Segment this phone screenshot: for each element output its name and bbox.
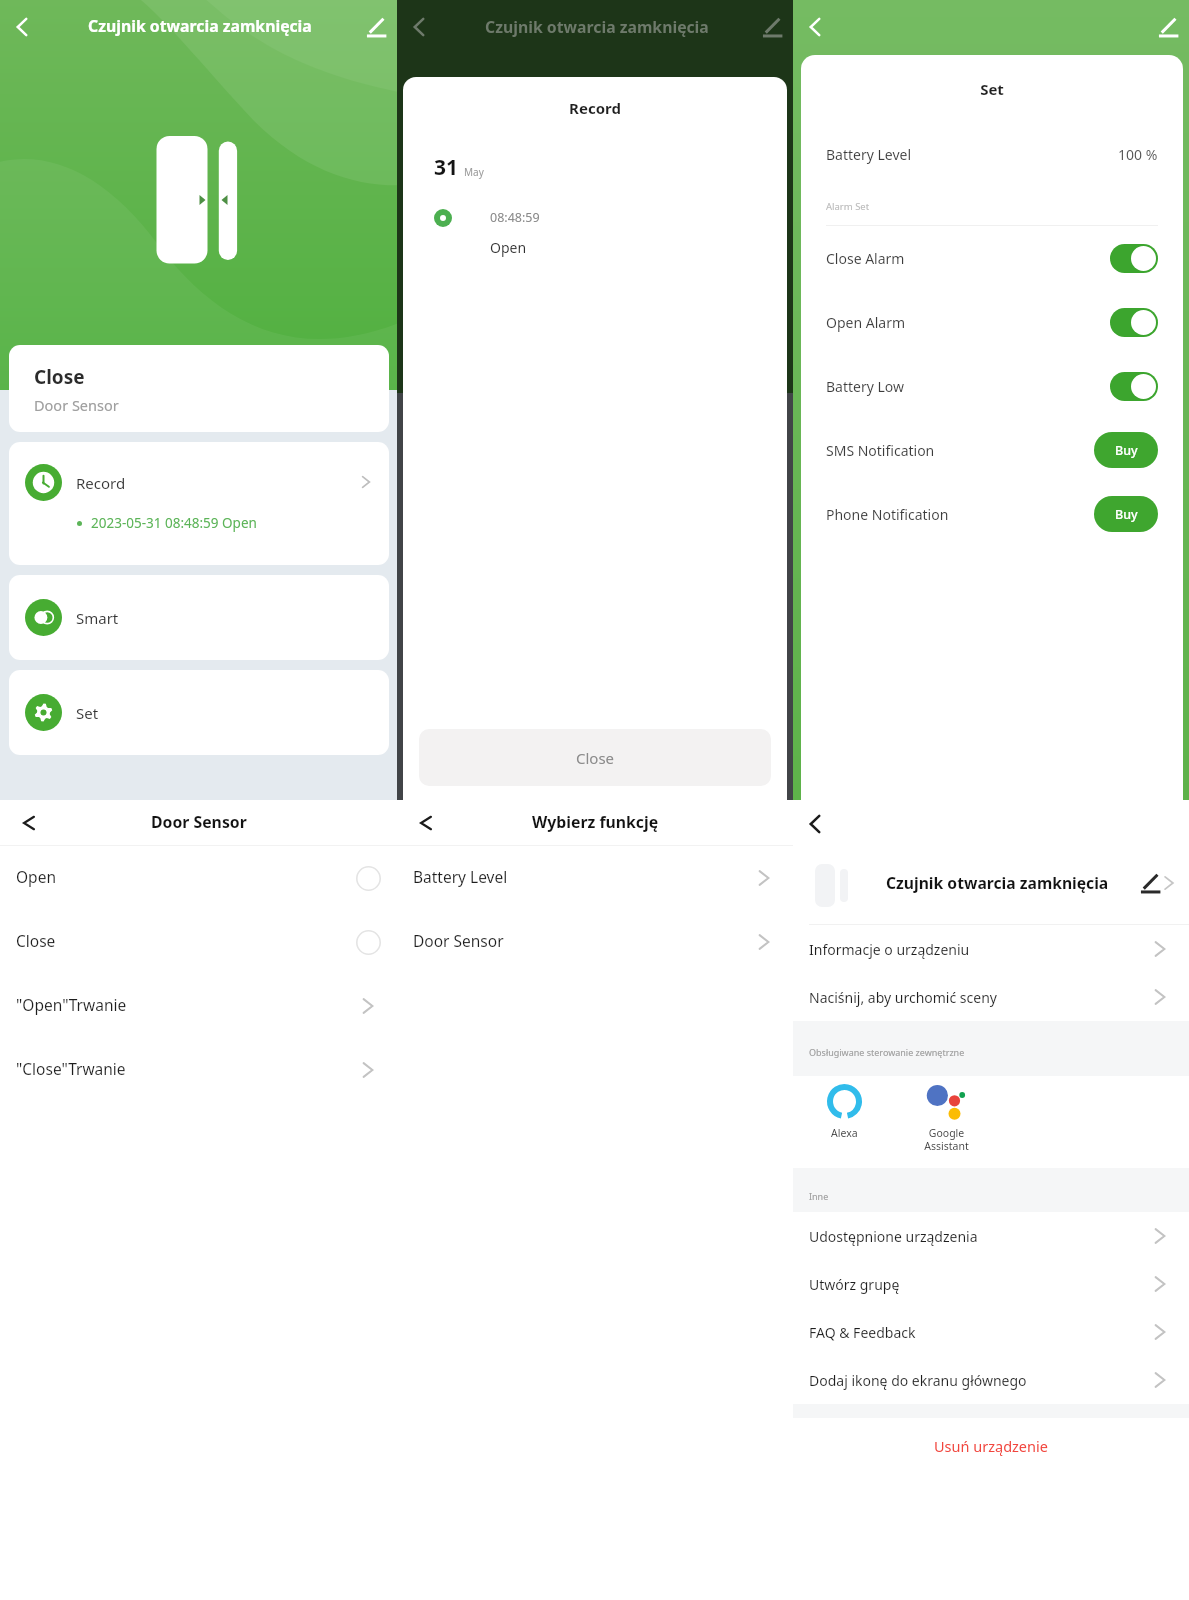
button[interactable]: Battery Low xyxy=(826,354,1158,418)
staticText: Naciśnij, aby urchomić sceny xyxy=(809,988,997,1007)
staticText: Alarm Set xyxy=(826,200,870,213)
staticText: Battery Level xyxy=(826,145,912,164)
button[interactable]: Door Sensor xyxy=(413,910,776,974)
button[interactable]: Udostępnione urządzenia xyxy=(809,1212,1172,1260)
staticText: Obsługiwane sterowanie zewnętrzne xyxy=(809,1046,965,1058)
button[interactable]: Buy xyxy=(1094,496,1158,532)
staticText: "Open"Trwanie xyxy=(16,994,127,1015)
staticText: Informacje o urządzeniu xyxy=(809,940,970,959)
staticText: Open xyxy=(490,238,527,257)
button[interactable]: Alexa xyxy=(811,1076,877,1140)
staticText: Utwórz grupę xyxy=(809,1275,900,1294)
staticText: Open xyxy=(16,866,56,887)
button[interactable]: Usuń urządzenie xyxy=(793,1418,1189,1474)
staticText: Open Alarm xyxy=(826,313,906,332)
button[interactable]: Set xyxy=(9,670,389,755)
staticText: "Close"Trwanie xyxy=(16,1058,126,1079)
staticText: Czujnik otwarcia zamknięcia xyxy=(88,15,312,37)
staticText: Door Sensor xyxy=(34,395,119,415)
staticText: Usuń urządzenie xyxy=(934,1436,1048,1456)
button[interactable]: Buy xyxy=(1094,432,1158,468)
button[interactable]: Battery Level xyxy=(413,846,776,910)
button[interactable]: Open Alarm xyxy=(826,290,1158,354)
staticText: Set xyxy=(801,79,1183,99)
staticText: Battery Level xyxy=(413,866,508,887)
staticText: Set xyxy=(76,703,99,723)
button[interactable]: "Open"Trwanie xyxy=(16,974,380,1038)
staticText: Door Sensor xyxy=(413,930,504,951)
button[interactable]: Close xyxy=(9,345,389,432)
staticText: Google Assistant xyxy=(924,1126,969,1153)
staticText: Door Sensor xyxy=(151,811,247,833)
staticText: 31 xyxy=(434,153,459,182)
button[interactable]: Edit xyxy=(760,13,788,41)
button[interactable]: Back xyxy=(8,13,36,41)
staticText: Record xyxy=(76,473,126,493)
button[interactable]: Record xyxy=(9,442,389,565)
button[interactable]: Open xyxy=(16,846,381,910)
staticText: May xyxy=(464,165,484,179)
staticText: Dodaj ikonę do ekranu głównego xyxy=(809,1371,1027,1390)
button[interactable]: SMS Notification xyxy=(826,418,1158,482)
button[interactable]: Smart xyxy=(9,575,389,660)
staticText: Buy xyxy=(1115,442,1138,459)
staticText: Wybierz funkcję xyxy=(532,811,659,833)
staticText: Inne xyxy=(809,1190,829,1202)
staticText: 2023-05-31 08:48:59 Open xyxy=(91,514,257,532)
button[interactable]: Back xyxy=(405,13,433,41)
button[interactable]: Phone Notification xyxy=(826,482,1158,546)
staticText: Czujnik otwarcia zamknięcia xyxy=(485,16,709,38)
button[interactable]: FAQ & Feedback xyxy=(809,1308,1172,1356)
staticText: 08:48:59 xyxy=(490,209,540,226)
staticText: Close xyxy=(576,748,615,768)
button[interactable]: Close xyxy=(16,910,381,974)
staticText: Record xyxy=(403,98,787,118)
button[interactable]: Czujnik otwarcia zamknięcia xyxy=(815,848,1181,924)
button[interactable]: Close Alarm xyxy=(826,226,1158,290)
staticText: 100 % xyxy=(1118,145,1158,164)
staticText: FAQ & Feedback xyxy=(809,1323,916,1342)
button[interactable]: Naciśnij, aby urchomić sceny xyxy=(809,973,1172,1021)
staticText: SMS Notification xyxy=(826,441,935,460)
button[interactable]: Back xyxy=(412,809,440,837)
button[interactable]: Utwórz grupę xyxy=(809,1260,1172,1308)
button[interactable]: Close xyxy=(419,729,771,786)
staticText: Phone Notification xyxy=(826,505,949,524)
staticText: Battery Low xyxy=(826,377,905,396)
button[interactable]: Back xyxy=(15,809,43,837)
staticText: Close xyxy=(34,364,85,390)
button[interactable]: Back xyxy=(801,13,829,41)
staticText: Close Alarm xyxy=(826,249,905,268)
button[interactable]: Informacje o urządzeniu xyxy=(809,925,1172,973)
staticText: Udostępnione urządzenia xyxy=(809,1227,978,1246)
button[interactable]: Edit xyxy=(364,13,392,41)
button[interactable]: Dodaj ikonę do ekranu głównego xyxy=(809,1356,1172,1404)
button[interactable]: Back xyxy=(801,810,829,838)
staticText: Alexa xyxy=(831,1126,858,1140)
staticText: Czujnik otwarcia zamknięcia xyxy=(886,872,1109,893)
staticText: Smart xyxy=(76,608,119,628)
button[interactable]: Google Assistant xyxy=(910,1076,982,1153)
staticText: Buy xyxy=(1115,506,1138,523)
button[interactable]: Edit xyxy=(1156,13,1184,41)
button[interactable]: "Close"Trwanie xyxy=(16,1038,380,1102)
staticText: Close xyxy=(16,930,56,951)
